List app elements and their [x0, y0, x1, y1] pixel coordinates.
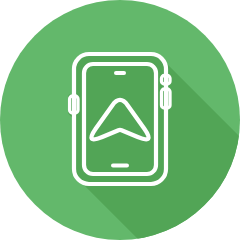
button[interactable]: Mobile navigation app — [0, 0, 240, 240]
